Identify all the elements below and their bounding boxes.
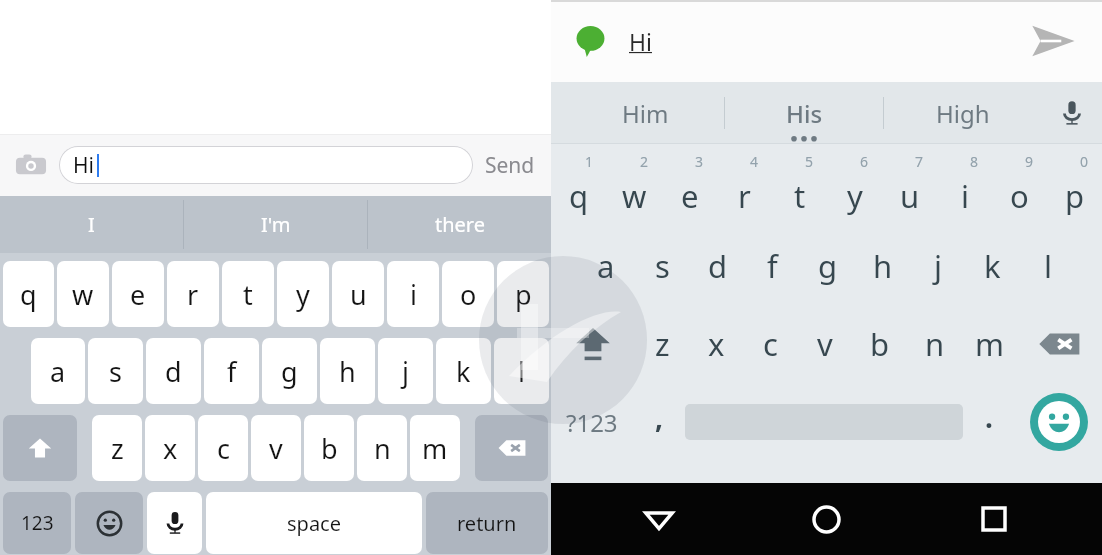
button[interactable]: a [31,338,85,404]
button[interactable]: a [578,227,634,305]
button[interactable]: i [387,261,439,327]
button[interactable]: His [725,82,883,144]
button[interactable]: 2 [607,149,662,227]
button[interactable]: I [0,196,183,253]
staticText: Hi [73,151,94,180]
button[interactable]: s [634,227,690,305]
button[interactable]: f [204,338,259,404]
button[interactable]: Backspace [1017,305,1102,383]
button[interactable]: there [368,196,551,253]
staticText: Send [485,151,535,180]
button[interactable]: x [145,415,195,481]
staticText: s [109,353,122,390]
button[interactable]: ?123 [551,383,633,461]
button[interactable]: p [497,261,549,327]
button[interactable]: 123 [3,492,71,554]
button[interactable]: 7 [882,149,937,227]
button[interactable]: h [320,338,375,404]
staticText: a [597,245,615,287]
button[interactable]: m [962,305,1017,383]
button[interactable]: 5 [772,149,827,227]
button[interactable]: 4 [717,149,772,227]
button[interactable]: 9 [992,149,1047,227]
button[interactable]: Recent apps [910,483,1078,555]
button[interactable]: g [800,227,855,305]
button[interactable]: k [965,227,1020,305]
button[interactable]: Backspace [475,415,548,481]
button[interactable]: Hi [629,26,1024,57]
button[interactable]: z [635,305,689,383]
button[interactable]: y [277,261,329,327]
button[interactable]: f [745,227,800,305]
button[interactable]: h [855,227,910,305]
button[interactable]: 8 [937,149,992,227]
button[interactable]: Camera [13,147,49,183]
button[interactable]: n [907,305,962,383]
button[interactable]: b [852,305,907,383]
button[interactable]: d [146,338,201,404]
button[interactable]: Hi [59,146,473,184]
button[interactable]: z [92,415,142,481]
button[interactable]: Emoji [1015,383,1102,461]
button[interactable]: s [88,338,143,404]
staticText: 4 [750,152,759,171]
button[interactable]: k [436,338,491,404]
button[interactable]: . [963,383,1015,461]
button[interactable]: j [910,227,965,305]
button[interactable]: e [112,261,164,327]
button[interactable]: c [198,415,248,481]
button[interactable]: Messaging app [571,22,609,60]
button[interactable]: r [167,261,219,327]
button[interactable]: q [3,261,54,327]
button[interactable]: Hide keyboard [575,483,742,555]
button[interactable]: m [410,415,460,481]
staticText: Hi [629,26,652,57]
staticText: 123 [21,510,54,536]
staticText: z [655,323,670,365]
button[interactable]: u [332,261,384,327]
button[interactable]: w [57,261,109,327]
button[interactable]: v [797,305,852,383]
button[interactable]: 6 [827,149,882,227]
button[interactable]: v [251,415,301,481]
staticText: m [975,323,1004,365]
button[interactable]: 0 [1047,149,1102,227]
button[interactable]: 1 [551,149,607,227]
button[interactable]: Him [567,82,724,144]
staticText: d [165,353,182,390]
button[interactable]: Send [1024,12,1082,70]
button[interactable]: g [262,338,317,404]
button[interactable]: l [494,338,549,404]
button[interactable]: Send [482,145,538,186]
button[interactable]: b [304,415,354,481]
staticText: v [269,430,283,467]
button[interactable]: High [884,82,1042,144]
button[interactable]: return [426,492,548,554]
staticText: y [847,175,863,217]
staticText: l [1044,245,1052,287]
button[interactable]: j [378,338,433,404]
button[interactable]: l [1020,227,1075,305]
button[interactable]: 3 [662,149,717,227]
button[interactable]: I'm [184,196,367,253]
button[interactable]: space [206,492,422,554]
staticText: i [410,276,417,313]
button[interactable]: c [743,305,797,383]
button[interactable]: x [689,305,743,383]
button[interactable]: n [357,415,407,481]
button[interactable]: Shift [551,305,635,383]
button[interactable]: , [633,383,685,461]
button[interactable]: t [222,261,274,327]
button[interactable]: Dictate [147,492,202,554]
button[interactable]: o [442,261,494,327]
staticText: t [243,276,253,313]
button[interactable]: Shift [3,415,77,481]
button[interactable]: d [690,227,745,305]
button[interactable]: Home [742,483,910,555]
staticText: c [763,323,778,365]
button[interactable]: Voice input [1042,82,1102,144]
staticText: space [287,510,341,537]
staticText: I'm [261,211,291,238]
button[interactable]: Emoji [75,492,143,554]
